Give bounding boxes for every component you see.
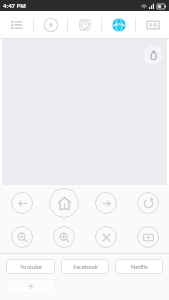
button[interactable]: Pointer mode (143, 45, 163, 65)
button[interactable]: Tabs (136, 11, 169, 38)
button[interactable]: Close (95, 226, 117, 248)
button[interactable]: New tab (137, 226, 159, 248)
staticText: Facebook (73, 263, 98, 270)
button[interactable]: Youtube (6, 259, 55, 274)
button[interactable]: Play (34, 11, 67, 38)
button[interactable]: Zoom out (11, 226, 33, 248)
staticText: Netflix (131, 263, 148, 270)
button[interactable]: Forward (95, 192, 117, 214)
button[interactable]: Zoom in (53, 226, 75, 248)
staticText: Youtube (20, 263, 42, 270)
button[interactable]: Home (49, 188, 79, 218)
button[interactable]: Facebook (61, 259, 109, 274)
button[interactable]: Back (11, 192, 33, 214)
button[interactable]: Netflix (115, 259, 163, 274)
button[interactable]: Menu (0, 11, 33, 38)
button[interactable]: Reload (137, 192, 159, 214)
button[interactable]: Add bookmark (6, 279, 56, 294)
staticText: 4:47 PM (3, 2, 26, 10)
button[interactable]: Snapshot (68, 11, 101, 38)
button[interactable]: Browser (102, 11, 135, 38)
